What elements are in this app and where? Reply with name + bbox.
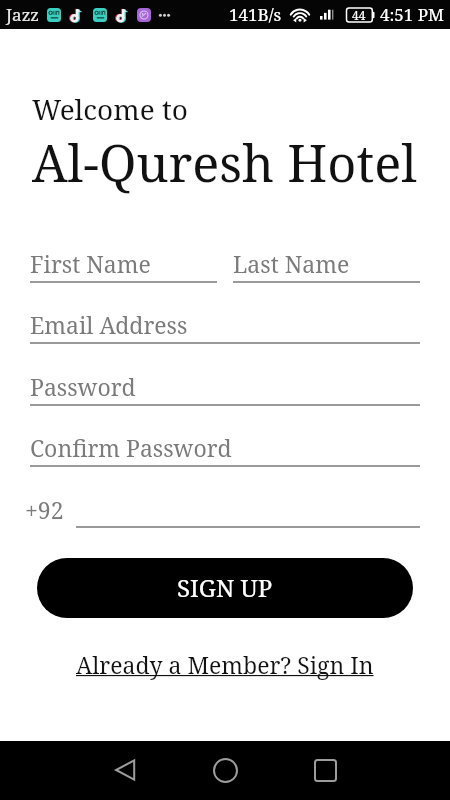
- button[interactable]: First Name: [30, 248, 217, 283]
- button[interactable]: Last Name: [233, 248, 420, 283]
- staticText: 44: [352, 7, 366, 23]
- button[interactable]: SIGN UP: [37, 558, 413, 618]
- staticText: 141B/s: [229, 3, 282, 26]
- staticText: Jazz: [6, 3, 40, 26]
- staticText: Confirm Password: [30, 432, 232, 463]
- staticText: 4:51 PM: [380, 3, 445, 26]
- button[interactable]: Already a Member? Sign In: [76, 649, 374, 680]
- button[interactable]: Password: [30, 371, 420, 406]
- staticText: +92: [25, 494, 64, 525]
- staticText: Password: [30, 371, 136, 402]
- button[interactable]: Recent apps: [300, 745, 350, 795]
- staticText: First Name: [30, 248, 151, 279]
- staticText: SIGN UP: [177, 571, 273, 604]
- staticText: Al-Quresh Hotel: [32, 128, 417, 197]
- staticText: Welcome to: [32, 90, 188, 128]
- button[interactable]: Back: [100, 745, 150, 795]
- button[interactable]: Confirm Password: [30, 432, 420, 467]
- staticText: Email Address: [30, 309, 188, 340]
- button[interactable]: Home: [200, 745, 250, 795]
- staticText: Last Name: [233, 248, 350, 279]
- button[interactable]: Email Address: [30, 309, 420, 344]
